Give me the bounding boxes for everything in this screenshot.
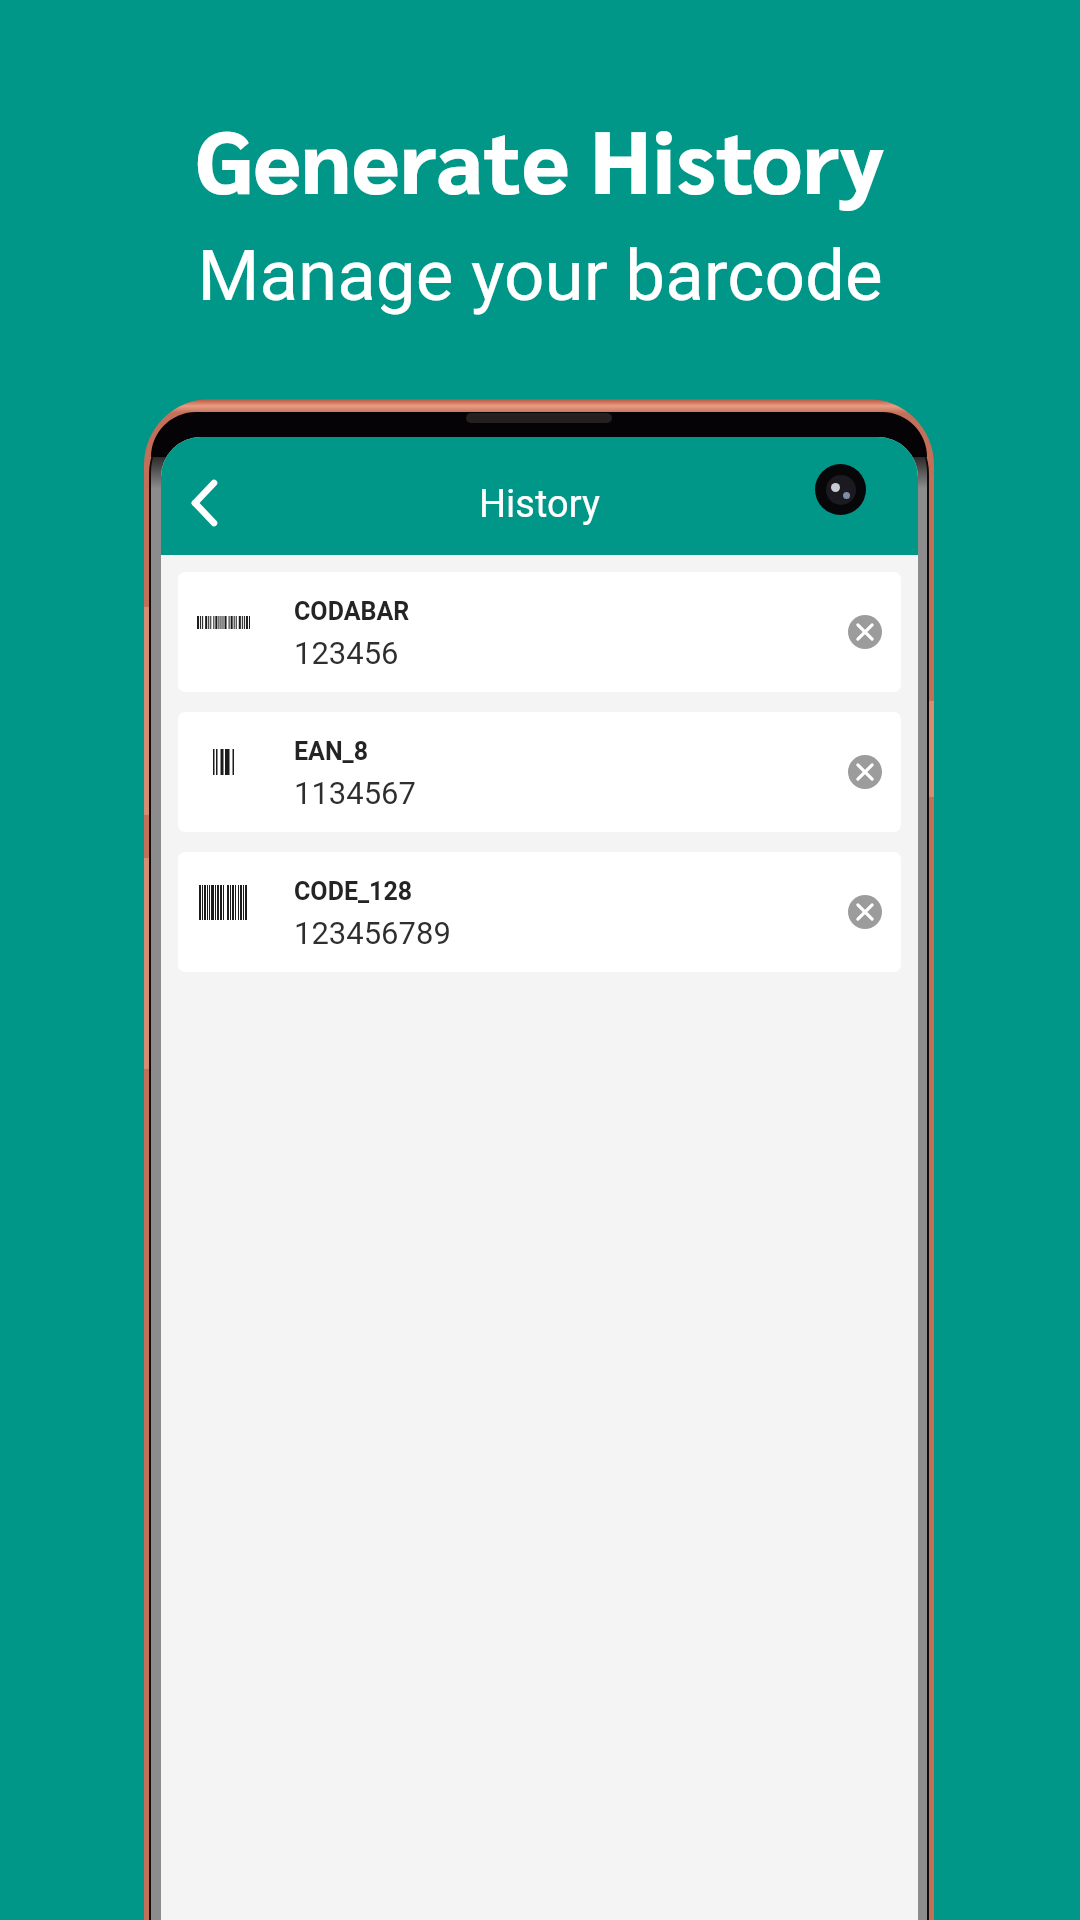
staticText: Generate History: [195, 100, 885, 214]
staticText: CODE_128: [294, 877, 413, 906]
button[interactable]: Delete: [841, 748, 889, 796]
button[interactable]: Back: [164, 462, 234, 532]
button[interactable]: Delete: [841, 888, 889, 936]
staticText: 123456: [294, 635, 399, 671]
button[interactable]: CODE_128: [178, 852, 901, 972]
staticText: 123456789: [294, 915, 451, 951]
button[interactable]: Delete: [841, 608, 889, 656]
staticText: CODABAR: [294, 597, 410, 626]
staticText: Manage your barcode: [197, 234, 883, 317]
staticText: 1134567: [294, 775, 416, 811]
staticText: History: [479, 482, 600, 527]
button[interactable]: CODABAR: [178, 572, 901, 692]
button[interactable]: EAN_8: [178, 712, 901, 832]
staticText: EAN_8: [294, 737, 369, 766]
